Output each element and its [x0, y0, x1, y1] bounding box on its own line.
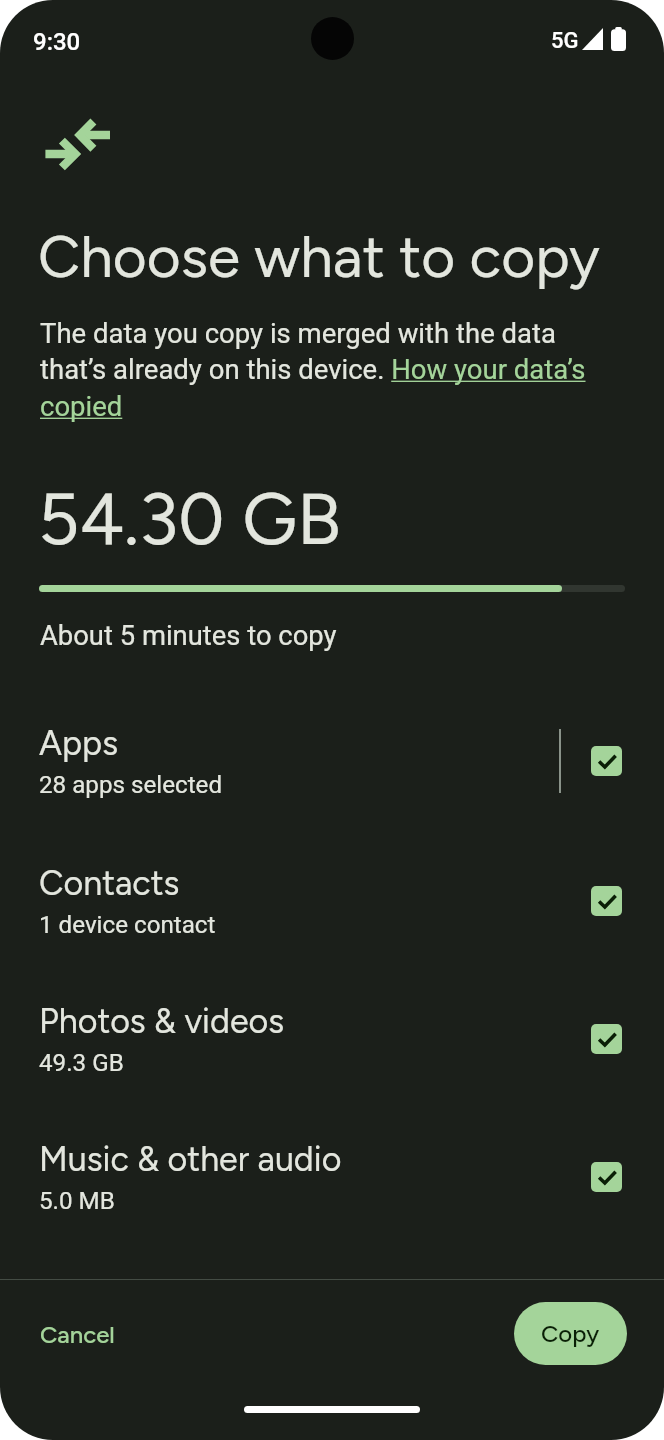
staticText: Contacts — [39, 863, 180, 904]
staticText: 9:30 — [33, 28, 81, 56]
staticText: The data you copy is merged with the dat… — [40, 317, 592, 423]
staticText: Choose what to copy — [38, 221, 600, 291]
staticText: Copy — [541, 1319, 600, 1348]
button[interactable]: Copy data between devices — [38, 112, 116, 176]
staticText: 49.3 GB — [39, 1049, 124, 1077]
other: Music & other audio, selected — [591, 1162, 622, 1192]
staticText: 1 device contact — [39, 911, 216, 939]
button[interactable]: Apps — [0, 692, 664, 830]
staticText: Cancel — [40, 1320, 115, 1349]
staticText: 5.0 MB — [39, 1187, 115, 1215]
other: Contacts, selected — [591, 886, 622, 916]
other: Photos & videos, selected — [591, 1024, 622, 1054]
button[interactable]: Copy — [514, 1302, 627, 1365]
button[interactable]: Photos & videos — [0, 970, 664, 1108]
button[interactable]: Music & other audio — [0, 1108, 664, 1246]
staticText: 28 apps selected — [39, 771, 223, 799]
staticText: Apps — [39, 723, 119, 764]
other: Apps, selected — [591, 746, 622, 776]
staticText: Music & other audio — [39, 1139, 342, 1180]
staticText: Photos & videos — [39, 1001, 285, 1042]
staticText: 54.30 GB — [38, 476, 341, 562]
staticText: About 5 minutes to copy — [40, 620, 337, 652]
button[interactable]: Cancel — [22, 1310, 132, 1357]
staticText: 5G — [551, 28, 579, 54]
button[interactable]: Contacts — [0, 832, 664, 970]
